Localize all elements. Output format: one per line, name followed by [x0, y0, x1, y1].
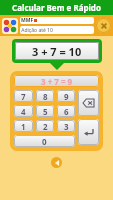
button[interactable]: Adição até 10 — [20, 26, 94, 34]
staticText: 2 — [43, 121, 48, 132]
button[interactable]: Close — [96, 18, 111, 33]
button[interactable]: 4 — [14, 105, 33, 117]
staticText: 6 — [64, 106, 69, 117]
staticText: 9 — [64, 91, 69, 102]
button[interactable]: MMF — [20, 17, 94, 24]
staticText: 5 — [43, 106, 48, 117]
button[interactable]: 8 — [36, 90, 54, 102]
button[interactable]: 1 — [14, 120, 33, 132]
button[interactable]: 3 — [57, 120, 75, 132]
button[interactable]: 6 — [57, 105, 75, 117]
button[interactable]: Back — [51, 157, 62, 168]
staticText: Calcular Bem e Rápido — [12, 2, 101, 13]
staticText: MMF — [21, 17, 34, 24]
staticText: 8 — [43, 91, 48, 102]
button[interactable]: Backspace — [78, 90, 99, 116]
button[interactable]: 7 — [14, 90, 33, 102]
button[interactable]: App icon — [2, 18, 18, 34]
button[interactable]: 3 + 7 = 9 — [14, 75, 99, 87]
staticText: 4 — [21, 106, 26, 117]
staticText: 3 + 7 = 9 — [41, 76, 73, 87]
staticText: 7 — [21, 91, 26, 102]
button[interactable]: Enter — [78, 119, 99, 145]
button[interactable]: 0 — [14, 135, 75, 147]
button[interactable]: 9 — [57, 90, 75, 102]
button[interactable]: 5 — [36, 105, 54, 117]
staticText: 1 — [21, 121, 26, 132]
staticText: Adição até 10 — [20, 27, 53, 34]
staticText: 3 — [64, 121, 69, 132]
staticText: 0 — [42, 136, 47, 147]
button[interactable]: 2 — [36, 120, 54, 132]
staticText: 3 + 7 = 10 — [32, 44, 82, 59]
